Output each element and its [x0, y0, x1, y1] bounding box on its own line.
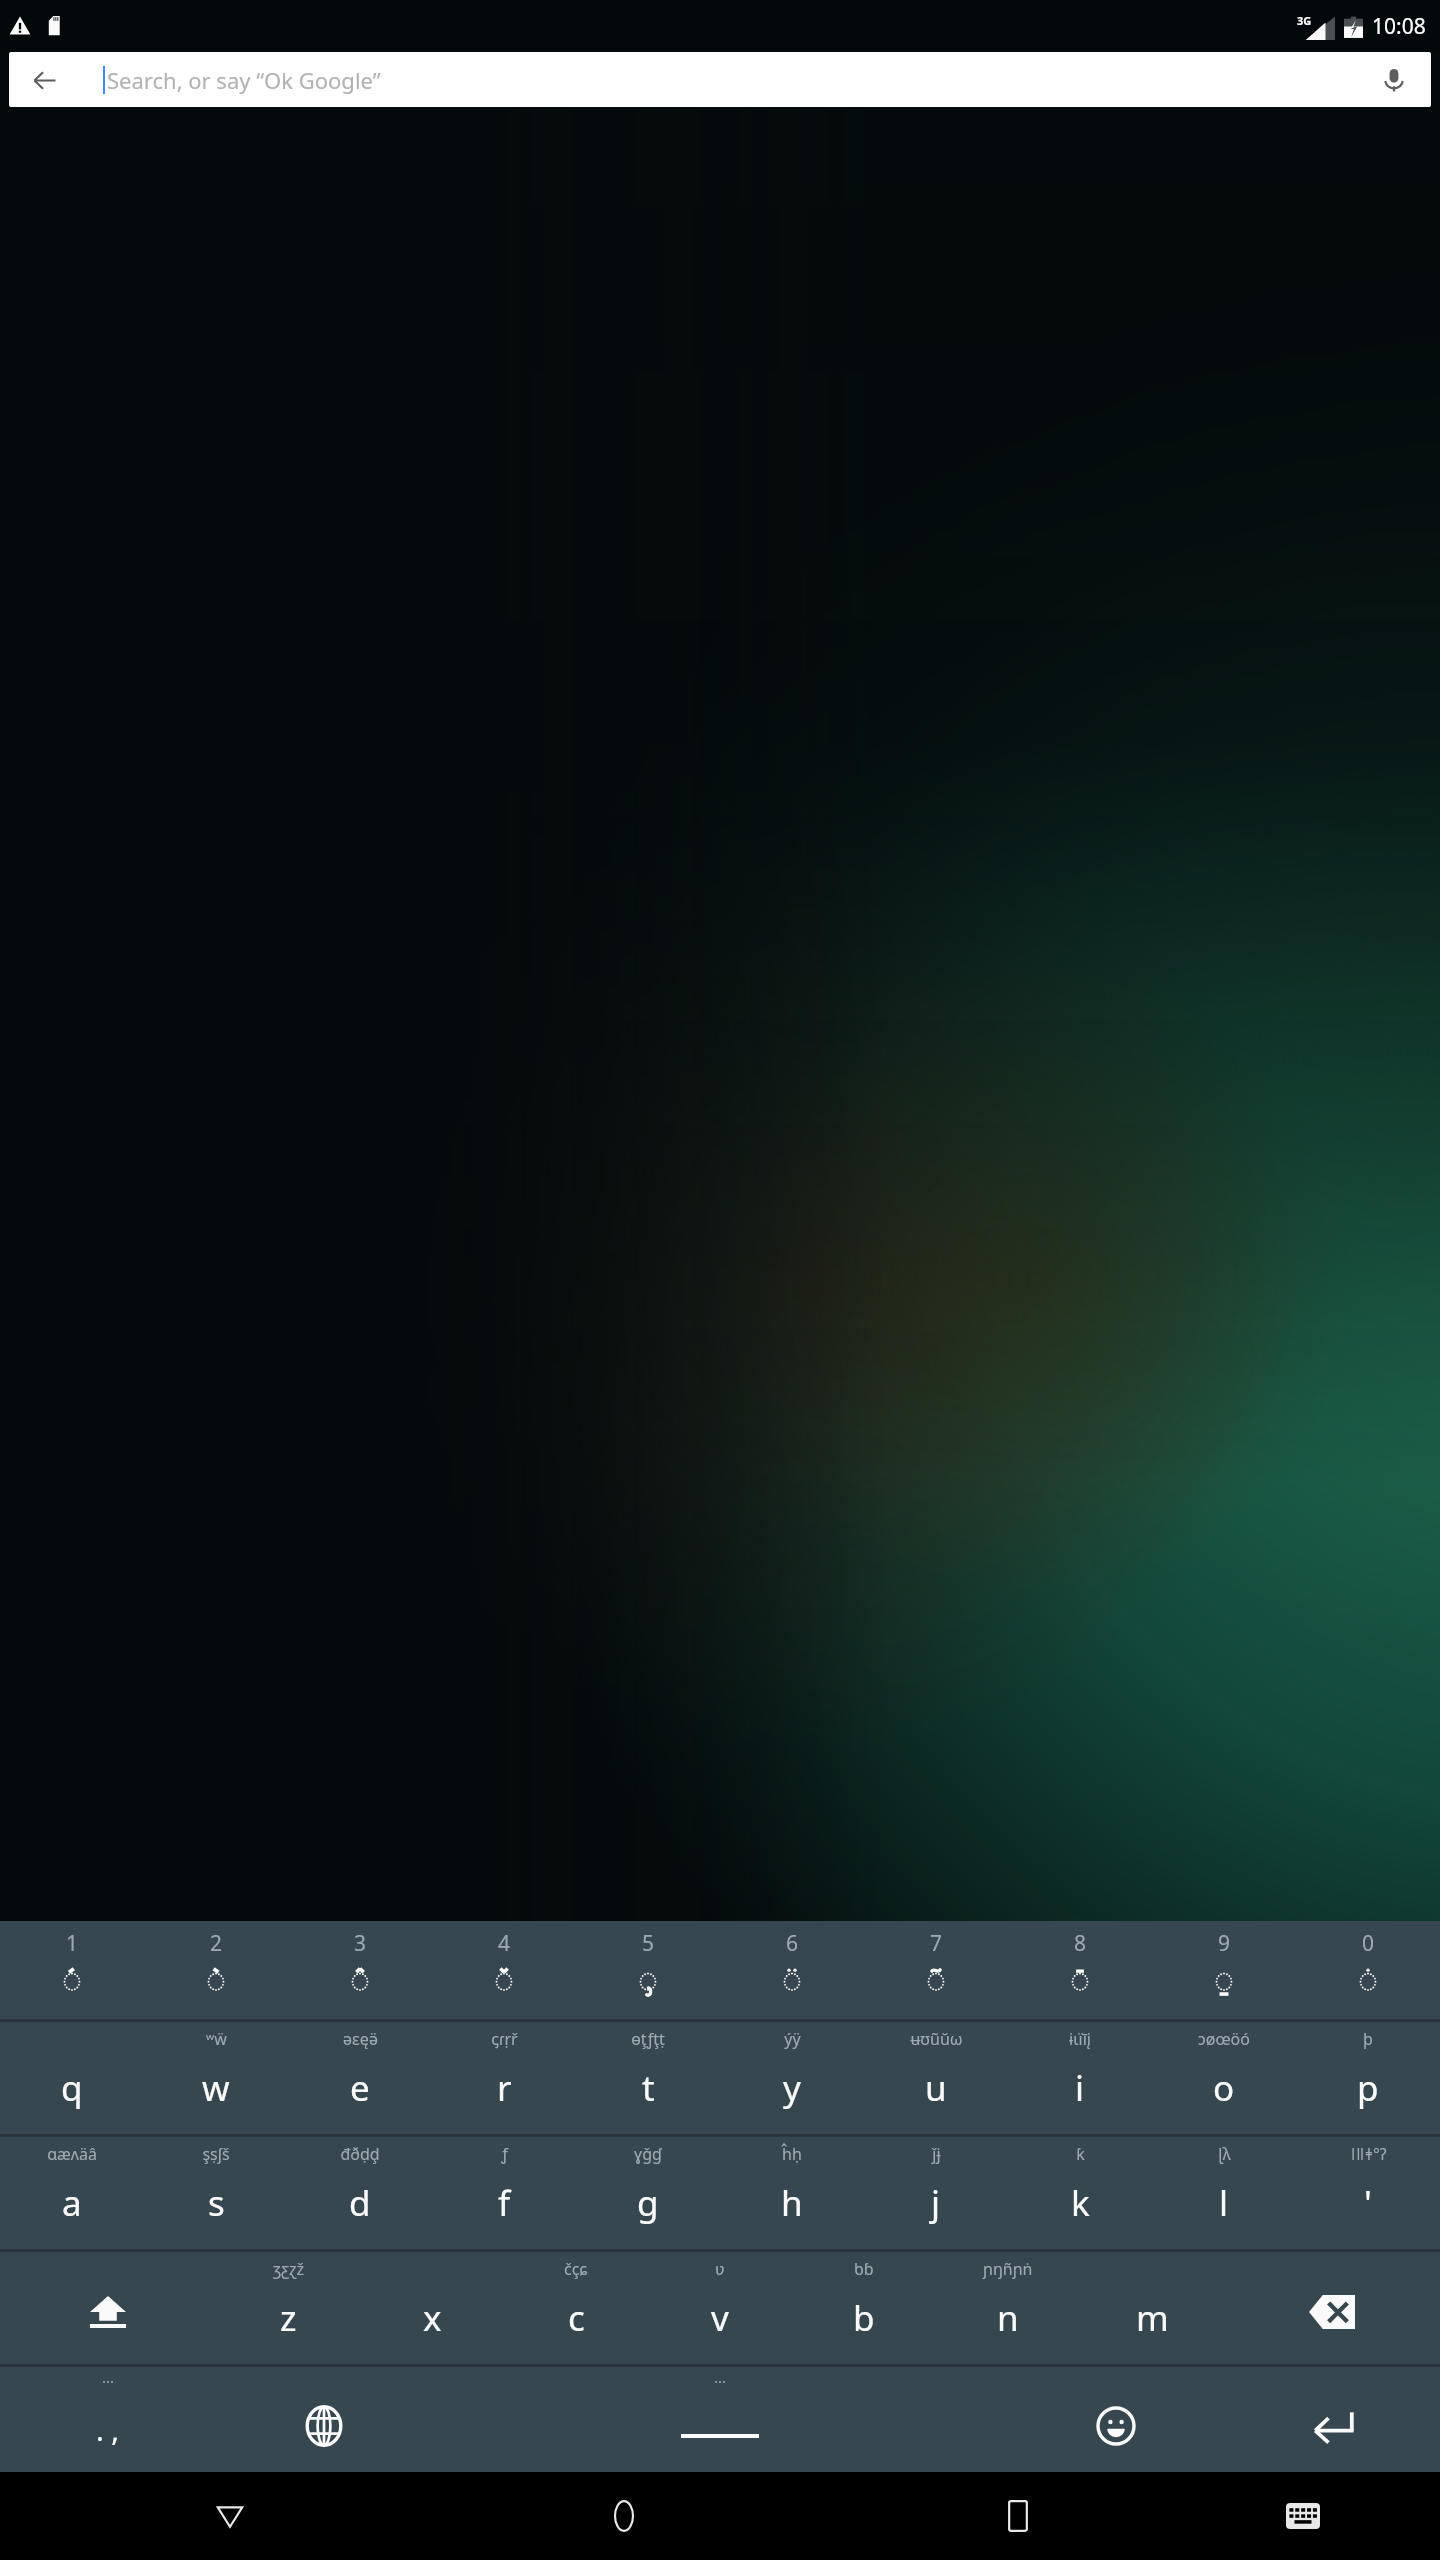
staticText: . , — [96, 2410, 120, 2449]
staticText: ··· — [102, 2371, 115, 2391]
staticText: ǀǁǂ°ʔ — [1350, 2143, 1387, 2165]
button[interactable]: Backspace — [1224, 2252, 1440, 2364]
staticText: p — [1357, 2064, 1379, 2112]
button[interactable]: 8 — [1008, 1921, 1152, 2019]
button[interactable]: ʋ — [648, 2252, 792, 2364]
staticText: 9 — [1218, 1929, 1231, 1958]
button[interactable]: ··· — [0, 2367, 216, 2472]
staticText: o — [1213, 2064, 1235, 2112]
button[interactable]: Back — [9, 52, 1431, 107]
button[interactable]: Voice search — [1371, 57, 1417, 103]
staticText: ýÿ — [784, 2028, 801, 2050]
staticText: ' — [1364, 2179, 1372, 2227]
staticText: ʒƹɀž — [273, 2258, 304, 2280]
staticText: ĥḥ — [782, 2143, 802, 2165]
button[interactable]: ɑæʌäâ — [0, 2137, 144, 2249]
staticText: k — [1071, 2179, 1090, 2227]
button[interactable]: ǰɉ — [864, 2137, 1008, 2249]
button[interactable]: ʒƹɀž — [216, 2252, 360, 2364]
staticText: h — [781, 2179, 803, 2227]
staticText: a — [62, 2179, 82, 2227]
staticText: r — [497, 2064, 512, 2112]
button[interactable]: þ — [1296, 2022, 1440, 2134]
staticText: f — [498, 2179, 511, 2227]
button[interactable]: 0 — [1296, 1921, 1440, 2019]
button[interactable]: ʷẅ — [144, 2022, 288, 2134]
button[interactable]: x — [360, 2252, 504, 2364]
button[interactable]: Hide keyboard — [120, 2472, 339, 2560]
staticText: y — [783, 2064, 801, 2112]
staticText: 10:08 — [1372, 12, 1426, 41]
staticText: ɵţƒţṭ — [631, 2028, 665, 2050]
button[interactable]: 6 — [720, 1921, 864, 2019]
button[interactable]: m — [1080, 2252, 1224, 2364]
staticText: i — [1075, 2064, 1085, 2112]
staticText: m — [1136, 2294, 1169, 2342]
staticText: ɲŋñɲṅ — [983, 2258, 1033, 2280]
staticText: ƒ — [501, 2143, 508, 2165]
button[interactable]: Home — [514, 2472, 733, 2560]
staticText: čçɕ — [564, 2258, 588, 2280]
button[interactable]: 4 — [432, 1921, 576, 2019]
staticText: þ — [1363, 2028, 1373, 2050]
button[interactable]: ƙ — [1008, 2137, 1152, 2249]
staticText: ɣǧɠ — [634, 2143, 662, 2165]
button[interactable]: 7 — [864, 1921, 1008, 2019]
button[interactable]: ɭλ — [1152, 2137, 1296, 2249]
staticText: ··· — [714, 2371, 727, 2391]
staticText: ʋ — [715, 2258, 725, 2280]
staticText: 6 — [786, 1929, 799, 1958]
button[interactable]: q — [0, 2022, 144, 2134]
staticText: l — [1219, 2179, 1229, 2227]
staticText: 8 — [1074, 1929, 1087, 1958]
button[interactable]: ƅɓ — [792, 2252, 936, 2364]
staticText: 0 — [1362, 1929, 1375, 1958]
button[interactable]: ɣǧɠ — [576, 2137, 720, 2249]
button[interactable]: ɵţƒţṭ — [576, 2022, 720, 2134]
staticText: ƙ — [1076, 2143, 1085, 2165]
staticText: e — [350, 2064, 370, 2112]
button[interactable]: ýÿ — [720, 2022, 864, 2134]
staticText: 7 — [930, 1929, 943, 1958]
staticText: 3G — [1297, 13, 1312, 28]
staticText: d — [349, 2179, 371, 2227]
button[interactable]: şṣʃš — [144, 2137, 288, 2249]
button[interactable]: 3 — [288, 1921, 432, 2019]
button[interactable]: ĥḥ — [720, 2137, 864, 2249]
button[interactable]: ɔøœöó — [1152, 2022, 1296, 2134]
staticText: ƅɓ — [854, 2258, 874, 2280]
staticText: đðḍḑ — [340, 2143, 380, 2165]
staticText: ɨɩïīį — [1069, 2028, 1091, 2050]
button[interactable]: Change language — [216, 2367, 432, 2472]
staticText: ɑæʌäâ — [47, 2143, 97, 2165]
button[interactable]: ··· — [432, 2367, 1008, 2472]
staticText: Search, or say “Ok Google” — [107, 65, 381, 95]
staticText: 2 — [210, 1929, 223, 1958]
button[interactable]: ƒ — [432, 2137, 576, 2249]
staticText: ʷẅ — [206, 2028, 227, 2050]
button[interactable]: ǀǁǂ°ʔ — [1296, 2137, 1440, 2249]
button[interactable]: Back — [21, 57, 67, 103]
staticText: s — [208, 2179, 225, 2227]
button[interactable]: 2 — [144, 1921, 288, 2019]
button[interactable]: 9 — [1152, 1921, 1296, 2019]
button[interactable]: Enter — [1224, 2367, 1440, 2472]
button[interactable]: 5 — [576, 1921, 720, 2019]
button[interactable]: ꞔɾṛř — [432, 2022, 576, 2134]
button[interactable]: đðḍḑ — [288, 2137, 432, 2249]
button[interactable]: Switch keyboard — [1204, 2472, 1401, 2560]
button[interactable]: əɛęӛ — [288, 2022, 432, 2134]
button[interactable]: Shift — [0, 2252, 216, 2364]
button[interactable]: Recent apps — [908, 2472, 1127, 2560]
staticText: q — [61, 2064, 83, 2112]
button[interactable]: čçɕ — [504, 2252, 648, 2364]
staticText: ɭλ — [1218, 2143, 1231, 2165]
button[interactable]: 1 — [0, 1921, 144, 2019]
staticText: əɛęӛ — [343, 2028, 378, 2050]
button[interactable]: Emoji — [1008, 2367, 1224, 2472]
button[interactable]: ɲŋñɲṅ — [936, 2252, 1080, 2364]
button[interactable]: ʉʊũŭω — [864, 2022, 1008, 2134]
button[interactable]: ɨɩïīį — [1008, 2022, 1152, 2134]
staticText: x — [423, 2294, 442, 2342]
staticText: u — [925, 2064, 947, 2112]
